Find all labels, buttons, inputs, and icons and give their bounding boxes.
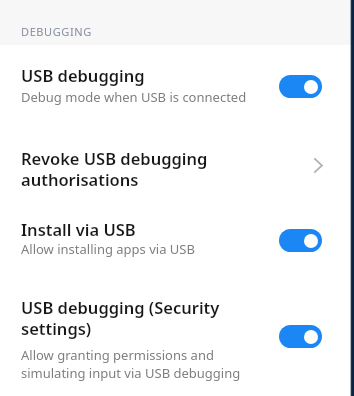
button[interactable] (279, 75, 322, 98)
staticText: DEBUGGING (21, 24, 92, 39)
button[interactable]: USB debugging (0, 56, 354, 114)
staticText: USB debugging (21, 64, 145, 86)
button[interactable]: USB debugging (Security settings) (0, 288, 354, 392)
button[interactable]: Revoke USB debugging authorisations (0, 138, 354, 200)
staticText: Allow installing apps via USB (21, 240, 195, 258)
button[interactable] (279, 325, 322, 348)
staticText: Install via USB (21, 218, 136, 240)
button[interactable]: Install via USB (0, 208, 354, 270)
staticText: Debug mode when USB is connected (21, 88, 247, 106)
button[interactable] (279, 229, 322, 252)
staticText: USB debugging (Security settings) (21, 296, 220, 340)
staticText: Revoke USB debugging authorisations (21, 147, 208, 191)
staticText: Allow granting permissions and simulatin… (21, 346, 241, 382)
